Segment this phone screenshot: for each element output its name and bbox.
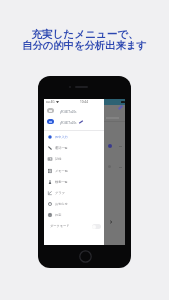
staticText: メモ一覧 [55,169,68,173]
button[interactable]: 設定 [48,209,104,220]
staticText: account [61,119,70,122]
staticText: au 4G [46,100,55,104]
button[interactable]: 的中入力 [48,131,104,142]
staticText: 設定 [55,213,62,217]
button[interactable]: 検索一覧 [48,176,104,187]
button[interactable]: ダークモード [50,221,101,231]
button[interactable]: グラフ [48,187,104,198]
button[interactable]: Home [79,250,92,263]
button[interactable]: お知らせ [48,198,104,209]
staticText: account [61,108,70,111]
staticText: ダークモード [50,224,70,228]
button[interactable]: 通話一覧 [48,142,104,153]
staticText: yh-ab-1a20s [60,110,77,114]
staticText: 的中入力 [55,135,68,139]
staticText: グラフ [55,191,65,195]
staticText: yh-ab-1a20s [60,121,77,125]
staticText: 通話一覧 [55,146,68,150]
staticText: お知らせ [55,202,68,206]
staticText: 10:44 [80,100,88,104]
button[interactable]: 記録 [48,153,104,164]
button[interactable]: account [44,117,104,127]
staticText: 充実したメニューで、 [31,28,139,41]
button[interactable]: メモ一覧 [48,165,104,176]
button[interactable]: account [44,106,104,116]
button[interactable]: Compose [118,105,123,110]
staticText: 検索一覧 [55,180,68,184]
staticText: 自分の的中を分析出来ます [22,39,147,52]
staticText: 記録 [55,157,62,161]
